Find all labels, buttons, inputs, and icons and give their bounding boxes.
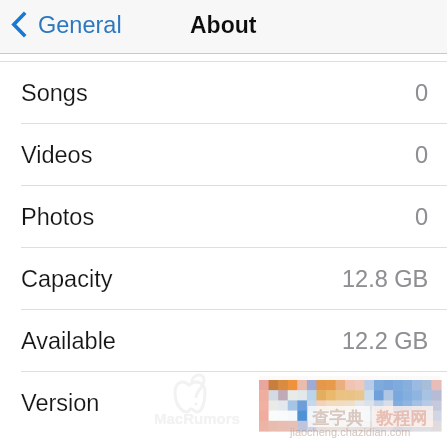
staticText: Capacity bbox=[21, 266, 113, 292]
button[interactable]: Songs bbox=[0, 62, 447, 124]
button[interactable]: Available bbox=[0, 310, 447, 372]
staticText: 教程网 bbox=[376, 408, 427, 429]
staticText: About bbox=[190, 12, 257, 38]
staticText: Songs bbox=[21, 80, 88, 106]
button[interactable]: Back to General bbox=[12, 11, 122, 38]
staticText: MacRumors bbox=[154, 410, 240, 427]
staticText: 0 bbox=[415, 204, 429, 230]
staticText: 查字典 bbox=[312, 408, 363, 429]
button[interactable]: Photos bbox=[0, 186, 447, 248]
staticText: Available bbox=[21, 328, 116, 354]
button[interactable]: Capacity bbox=[0, 248, 447, 310]
staticText: Version bbox=[21, 390, 100, 416]
staticText: 0 bbox=[415, 80, 429, 106]
staticText: 0 bbox=[415, 142, 429, 168]
staticText: General bbox=[38, 12, 122, 38]
button[interactable]: Videos bbox=[0, 124, 447, 186]
staticText: jiaocheng.chazidian.com bbox=[290, 426, 411, 438]
staticText: Photos bbox=[21, 204, 95, 230]
button[interactable]: Version bbox=[0, 372, 447, 434]
staticText: 12.2 GB bbox=[342, 328, 429, 354]
staticText: Videos bbox=[21, 142, 93, 168]
staticText: 12.8 GB bbox=[342, 266, 429, 292]
